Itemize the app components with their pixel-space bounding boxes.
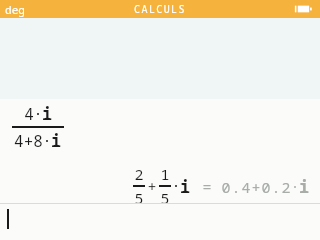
staticText: 5 xyxy=(160,188,170,208)
staticText: 0.4+0.2 xyxy=(221,177,292,197)
staticText: + xyxy=(147,176,157,196)
button[interactable]: deg xyxy=(5,2,25,17)
button[interactable]: Battery xyxy=(292,3,314,15)
button[interactable]: 4 xyxy=(0,18,320,203)
staticText: i xyxy=(299,175,310,198)
staticText: 4+8 xyxy=(14,130,43,152)
staticText: 5 xyxy=(134,188,144,208)
staticText: 1 xyxy=(160,164,170,184)
staticText: deg xyxy=(5,2,25,17)
staticText: 4 xyxy=(24,103,34,125)
staticText: i xyxy=(51,129,62,152)
button[interactable]: Input field xyxy=(0,204,320,240)
staticText: CALCULS xyxy=(134,2,186,16)
staticText: = xyxy=(202,176,212,196)
staticText: i xyxy=(180,175,191,198)
staticText: i xyxy=(42,102,53,125)
staticText: 2 xyxy=(134,164,144,184)
